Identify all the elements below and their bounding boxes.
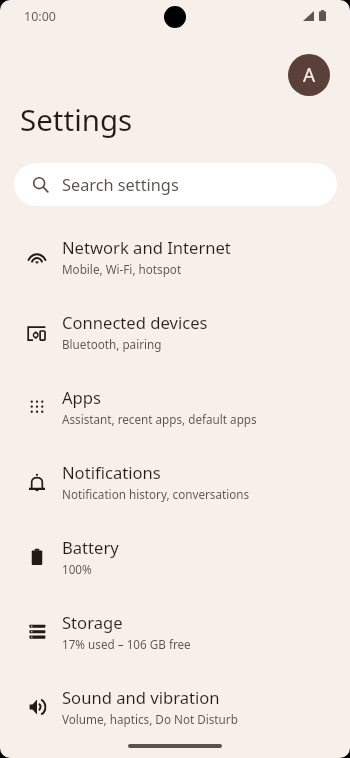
staticText: Mobile, Wi-Fi, hotspot [62, 261, 182, 277]
button[interactable]: Sound and vibration [0, 686, 350, 758]
staticText: Sound and vibration [62, 686, 220, 709]
staticText: Bluetooth, pairing [62, 336, 162, 352]
button[interactable]: Storage [0, 611, 350, 686]
staticText: Volume, haptics, Do Not Disturb [62, 711, 238, 727]
staticText: Storage [62, 611, 123, 634]
button[interactable]: Network and Internet [0, 236, 350, 311]
button[interactable]: Search settings [14, 163, 337, 206]
button[interactable]: Apps [0, 386, 350, 461]
staticText: Assistant, recent apps, default apps [62, 411, 257, 427]
button[interactable]: Notifications [0, 461, 350, 536]
staticText: A [303, 62, 316, 88]
staticText: Network and Internet [62, 236, 231, 259]
staticText: 100% [62, 561, 92, 577]
button[interactable]: Battery [0, 536, 350, 611]
staticText: Battery [62, 536, 119, 559]
button[interactable]: Account [288, 54, 330, 96]
staticText: Connected devices [62, 311, 208, 334]
button[interactable]: Connected devices [0, 311, 350, 386]
staticText: Settings [20, 99, 133, 139]
staticText: Notifications [62, 461, 161, 484]
staticText: 10:00 [24, 8, 56, 25]
staticText: Search settings [62, 174, 179, 196]
staticText: Notification history, conversations [62, 486, 250, 502]
staticText: 17% used – 106 GB free [62, 636, 191, 652]
staticText: Apps [62, 386, 101, 409]
